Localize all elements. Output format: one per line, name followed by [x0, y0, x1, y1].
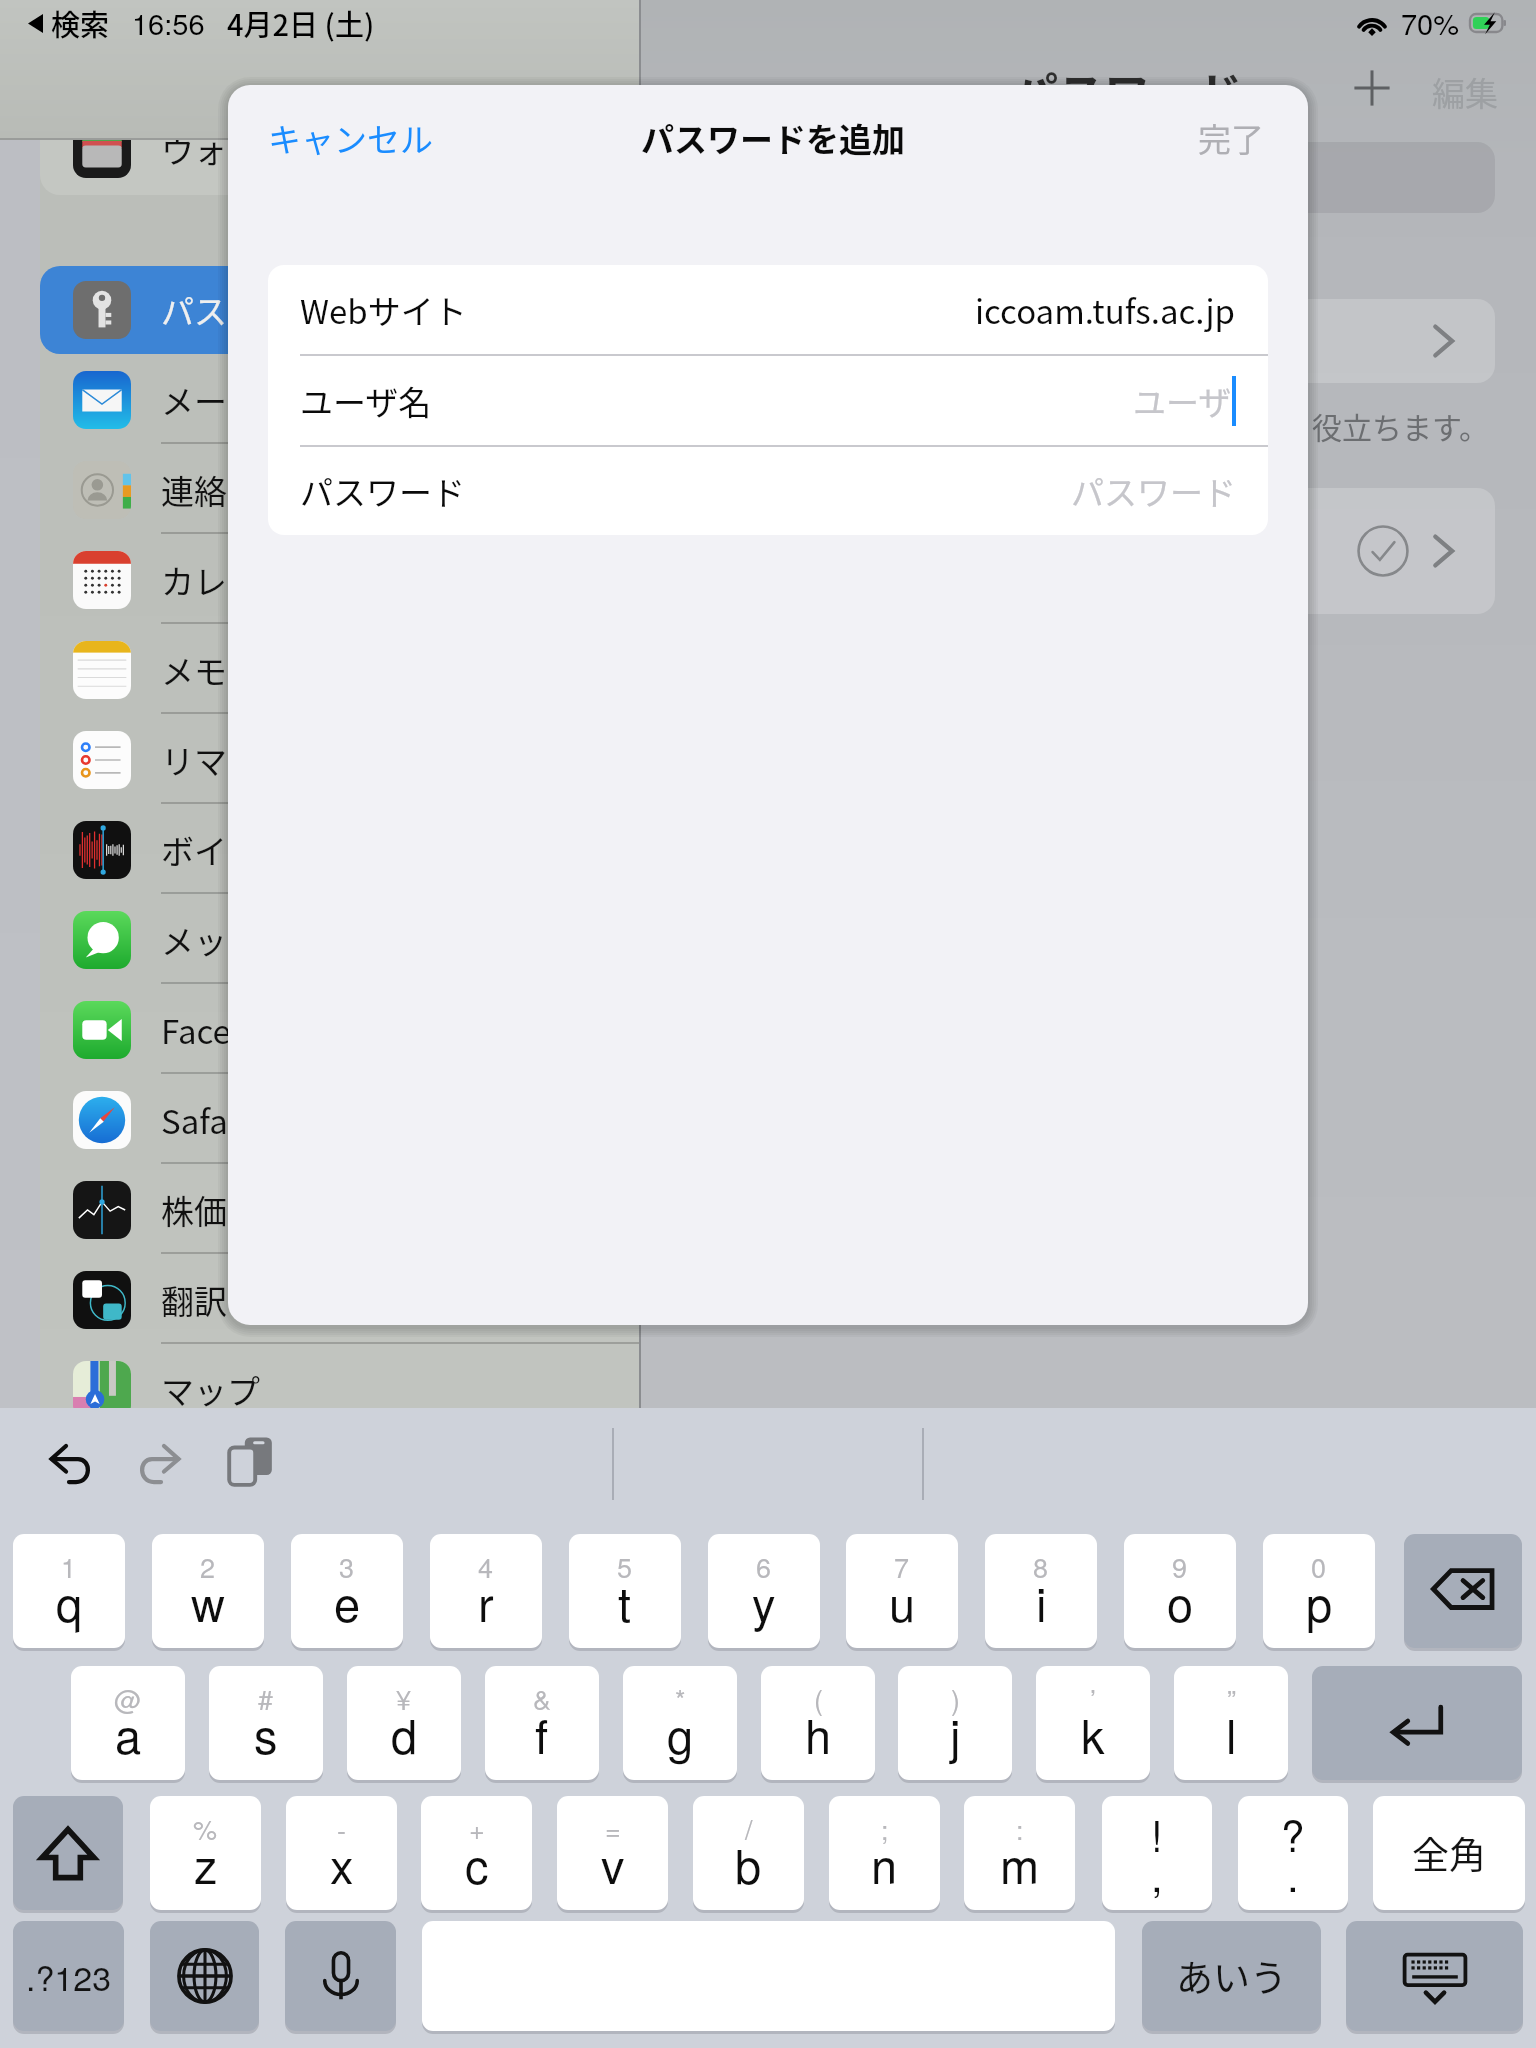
button[interactable]: =: [557, 1796, 668, 1910]
staticText: +: [469, 1809, 485, 1848]
button[interactable]: FaceTime: [40, 986, 680, 1074]
staticText: ユーザ: [1133, 377, 1232, 425]
staticText: c: [465, 1830, 489, 1897]
staticText: 70%: [1401, 2, 1460, 44]
button[interactable]: 9: [1124, 1534, 1236, 1648]
button[interactable]: Webサイト: [268, 265, 1268, 354]
staticText: :: [1016, 1809, 1024, 1848]
button[interactable]: あいう: [1142, 1921, 1321, 2031]
button[interactable]: 完了: [1190, 106, 1272, 170]
button[interactable]: ”: [1174, 1666, 1288, 1780]
button[interactable]: Redo: [135, 1439, 185, 1489]
button[interactable]: 翻訳: [40, 1256, 680, 1344]
other: Hide keyboard: [1397, 1938, 1473, 2014]
staticText: パスワード: [1012, 58, 1242, 125]
button[interactable]: ユーザ名: [268, 356, 1268, 445]
button[interactable]: ボイスメモ: [40, 806, 680, 894]
button[interactable]: マップ: [40, 1346, 680, 1434]
button[interactable]: 8: [985, 1534, 1097, 1648]
button[interactable]: 1: [13, 1534, 125, 1648]
staticText: 7: [894, 1547, 910, 1586]
button[interactable]: ウォレットとApple Pay: [40, 102, 680, 195]
staticText: 4: [478, 1547, 494, 1586]
staticText: 3: [339, 1547, 355, 1586]
button[interactable]: パスワード: [40, 266, 680, 354]
button[interactable]: !: [1102, 1796, 1212, 1910]
staticText: ?: [1281, 1804, 1305, 1864]
button[interactable]: 2: [152, 1534, 264, 1648]
staticText: .: [1287, 1844, 1299, 1904]
button[interactable]: Next keyboard: [150, 1921, 259, 2031]
other: Shift: [40, 1825, 96, 1881]
button[interactable]: 編集: [1432, 68, 1498, 116]
button[interactable]: パスワード: [268, 447, 1268, 535]
staticText: Safari: [161, 1096, 250, 1144]
staticText: z: [194, 1830, 218, 1897]
staticText: 9: [1172, 1547, 1188, 1586]
button[interactable]: Backspace: [1404, 1534, 1522, 1648]
button[interactable]: :: [964, 1796, 1075, 1910]
other: Next keyboard: [176, 1947, 234, 2005]
staticText: =: [605, 1809, 621, 1848]
staticText: u: [889, 1568, 916, 1635]
button[interactable]: Undo: [45, 1439, 95, 1489]
button[interactable]: &: [485, 1666, 599, 1780]
staticText: 5: [617, 1547, 633, 1586]
button[interactable]: 6: [708, 1534, 820, 1648]
button[interactable]: 4: [430, 1534, 542, 1648]
button[interactable]: ?: [1238, 1796, 1348, 1910]
button[interactable]: +: [421, 1796, 532, 1910]
staticText: FaceTime: [161, 1006, 308, 1054]
staticText: l: [1226, 1700, 1237, 1767]
button[interactable]: @: [71, 1666, 185, 1780]
staticText: @: [114, 1679, 142, 1718]
button[interactable]: -: [286, 1796, 397, 1910]
button[interactable]: リマインダー: [40, 716, 680, 804]
button[interactable]: 3: [291, 1534, 403, 1648]
button[interactable]: メモ: [40, 626, 680, 714]
staticText: 2: [200, 1547, 216, 1586]
button[interactable]: 株価: [40, 1166, 680, 1254]
button[interactable]: ¥: [347, 1666, 461, 1780]
button[interactable]: ’: [1036, 1666, 1150, 1780]
button[interactable]: Add: [1352, 68, 1392, 108]
staticText: ’: [1090, 1679, 1096, 1718]
button[interactable]: ): [898, 1666, 1012, 1780]
button[interactable]: Safari: [40, 1076, 680, 1164]
button[interactable]: 0: [1263, 1534, 1375, 1648]
button[interactable]: /: [693, 1796, 804, 1910]
staticText: m: [1000, 1830, 1040, 1897]
button[interactable]: %: [150, 1796, 261, 1910]
button[interactable]: 連絡先: [40, 446, 680, 534]
staticText: -: [337, 1809, 346, 1848]
staticText: ”: [1227, 1679, 1236, 1718]
staticText: f: [535, 1700, 549, 1767]
button[interactable]: (: [761, 1666, 875, 1780]
button[interactable]: メール: [40, 356, 680, 444]
button[interactable]: 全角: [1373, 1796, 1525, 1910]
button[interactable]: Hide keyboard: [1346, 1921, 1523, 2031]
button[interactable]: Dictation: [285, 1921, 396, 2031]
button[interactable]: .?123: [13, 1921, 124, 2031]
button[interactable]: 7: [846, 1534, 958, 1648]
staticText: n: [871, 1830, 898, 1897]
staticText: あいう: [1176, 1949, 1287, 2003]
button[interactable]: *: [623, 1666, 737, 1780]
button[interactable]: ;: [829, 1796, 940, 1910]
staticText: ユーザ名: [300, 377, 432, 425]
button[interactable]: Return: [1312, 1666, 1522, 1780]
staticText: .?123: [26, 1952, 112, 2001]
button[interactable]: 5: [569, 1534, 681, 1648]
button[interactable]: Shift: [13, 1796, 123, 1910]
staticText: メッセージ: [161, 916, 326, 964]
button[interactable]: カレンダー: [40, 536, 680, 624]
button[interactable]: キャンセル: [260, 106, 441, 170]
button[interactable]: Paste: [224, 1435, 276, 1487]
button[interactable]: メッセージ: [40, 896, 680, 984]
staticText: 検索: [51, 2, 110, 44]
button[interactable]: #: [209, 1666, 323, 1780]
staticText: ): [951, 1679, 960, 1718]
staticText: !: [1151, 1804, 1163, 1864]
staticText: 連絡先: [161, 466, 260, 514]
